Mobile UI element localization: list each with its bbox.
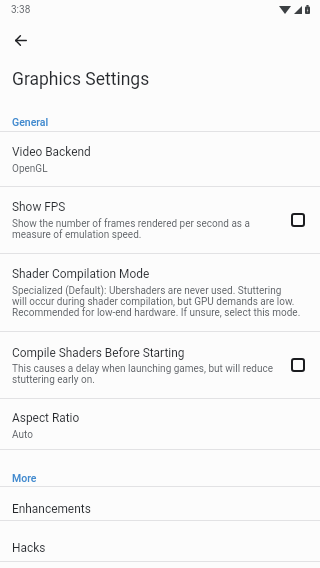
staticText: Graphics Settings	[12, 66, 150, 90]
button[interactable]: Enhancements	[0, 487, 320, 520]
staticText: Show the number of frames rendered per s…	[12, 218, 276, 240]
button[interactable]: Compile Shaders Before Starting	[0, 332, 320, 398]
button[interactable]: General	[0, 97, 320, 131]
button[interactable]: Toggle	[286, 208, 310, 232]
button[interactable]: Aspect Ratio	[0, 399, 320, 449]
button[interactable]: Shader Compilation Mode	[0, 254, 320, 331]
button[interactable]: Show FPS	[0, 187, 320, 253]
staticText: Compile Shaders Before Starting	[12, 345, 185, 360]
staticText: Specialized (Default): Ubershaders are n…	[12, 285, 301, 318]
staticText: Video Backend	[12, 144, 91, 159]
button[interactable]: Toggle	[286, 353, 310, 377]
staticText: General	[12, 115, 49, 129]
button[interactable]: More	[0, 450, 320, 486]
staticText: OpenGL	[12, 163, 48, 174]
button[interactable]: Back	[6, 25, 36, 55]
staticText: Auto	[12, 429, 33, 440]
button[interactable]: Hacks	[0, 521, 320, 561]
staticText: More	[12, 471, 37, 485]
staticText: 3:38	[11, 2, 31, 15]
button[interactable]: Video Backend	[0, 132, 320, 186]
staticText: Shader Compilation Mode	[12, 266, 150, 281]
staticText: Aspect Ratio	[12, 410, 80, 425]
staticText: Enhancements	[12, 501, 91, 516]
staticText: Hacks	[12, 540, 46, 555]
staticText: Show FPS	[12, 199, 66, 214]
staticText: This causes a delay when launching games…	[12, 363, 276, 385]
